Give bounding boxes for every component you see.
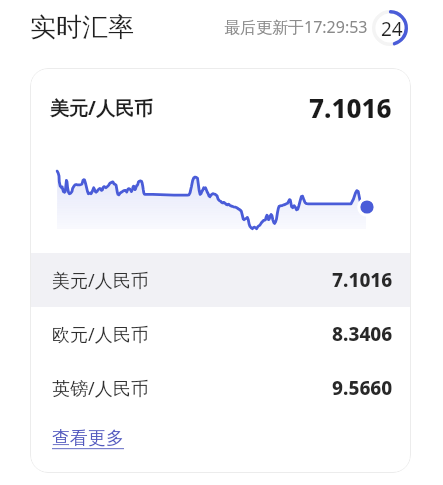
- staticText: 英镑/人民币: [52, 376, 149, 401]
- staticText: 美元/人民币: [52, 268, 149, 293]
- staticText: 7.1016: [309, 90, 392, 125]
- staticText: 美元/人民币: [50, 95, 153, 121]
- button[interactable]: 美元/人民币: [30, 253, 411, 307]
- staticText: 7.1016: [332, 267, 393, 293]
- staticText: 实时汇率: [30, 11, 134, 44]
- staticText: 24: [381, 16, 403, 42]
- button[interactable]: Refresh countdown: [371, 9, 409, 47]
- staticText: 9.5660: [332, 375, 393, 401]
- button[interactable]: 查看更多: [52, 427, 124, 450]
- staticText: 查看更多: [52, 427, 124, 450]
- staticText: 欧元/人民币: [52, 322, 149, 347]
- button[interactable]: 英镑/人民币: [30, 361, 411, 415]
- button[interactable]: 欧元/人民币: [30, 307, 411, 361]
- staticText: 最后更新于17:29:53: [224, 16, 368, 38]
- staticText: 8.3406: [332, 321, 393, 347]
